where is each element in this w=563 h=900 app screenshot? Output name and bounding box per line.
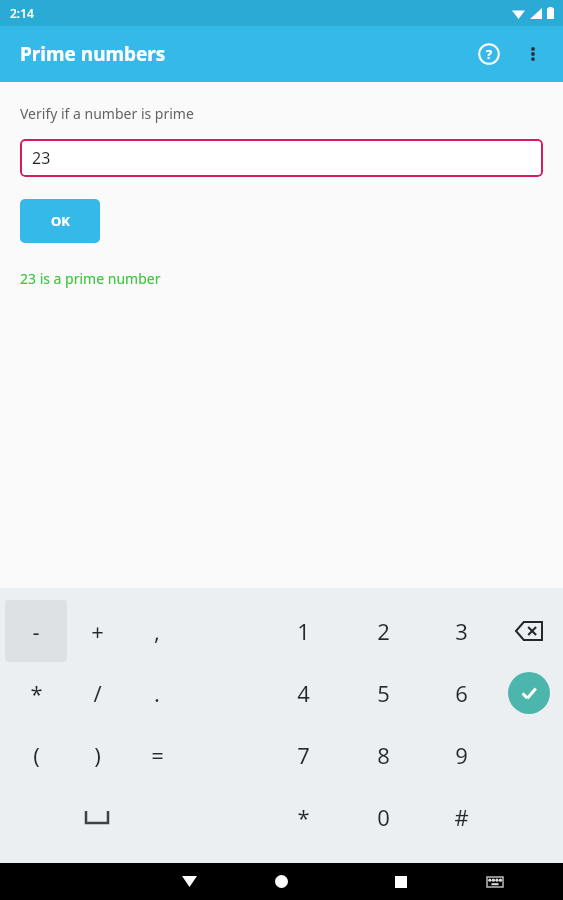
button[interactable]: . (125, 662, 189, 724)
button[interactable]: * (271, 786, 335, 848)
button[interactable]: Back (161, 863, 217, 900)
staticText: ? (486, 45, 493, 63)
staticText: = (151, 740, 164, 770)
staticText: ( (33, 740, 40, 770)
staticText: 8 (377, 740, 390, 770)
button[interactable]: Home (253, 863, 309, 900)
button[interactable]: More options (511, 32, 555, 76)
staticText: 7 (297, 740, 310, 770)
button[interactable]: 8 (351, 724, 415, 786)
button[interactable]: / (65, 662, 129, 724)
staticText: * (30, 678, 43, 708)
staticText: 4 (297, 678, 310, 708)
button[interactable]: 1 (271, 600, 335, 662)
staticText: 9 (455, 740, 468, 770)
button[interactable]: 0 (351, 786, 415, 848)
staticText: / (93, 678, 102, 708)
staticText: Verify if a number is prime (20, 104, 194, 123)
staticText: 2 (377, 616, 390, 646)
staticText: 2:14 (10, 5, 34, 21)
button[interactable]: + (65, 600, 129, 662)
button[interactable]: 5 (351, 662, 415, 724)
staticText: . (154, 678, 160, 708)
staticText: 23 (32, 147, 51, 169)
staticText: 3 (455, 616, 468, 646)
staticText: Prime numbers (20, 41, 166, 67)
button[interactable]: Space (65, 786, 129, 848)
button[interactable]: ( (4, 724, 68, 786)
button[interactable]: 6 (429, 662, 493, 724)
staticText: 23 is a prime number (20, 269, 161, 288)
staticText: 6 (455, 678, 468, 708)
button[interactable]: 9 (429, 724, 493, 786)
button[interactable]: ) (65, 724, 129, 786)
button[interactable]: Enter (497, 662, 561, 724)
button[interactable]: 3 (429, 600, 493, 662)
button[interactable]: OK (20, 199, 100, 243)
staticText: # (454, 802, 469, 832)
button[interactable]: - (4, 600, 68, 662)
button[interactable]: , (125, 600, 189, 662)
button[interactable]: Delete (497, 600, 561, 662)
button[interactable]: Recent apps (373, 863, 429, 900)
staticText: ) (94, 740, 101, 770)
button[interactable]: * (4, 662, 68, 724)
button[interactable]: 23 (20, 139, 543, 177)
staticText: * (297, 802, 310, 832)
button[interactable]: # (429, 786, 493, 848)
button[interactable]: 4 (271, 662, 335, 724)
button[interactable]: 2 (351, 600, 415, 662)
button[interactable]: Change keyboard (467, 863, 523, 900)
button[interactable]: = (125, 724, 189, 786)
staticText: , (154, 616, 160, 646)
button[interactable]: 7 (271, 724, 335, 786)
staticText: OK (51, 212, 70, 230)
button[interactable]: Help (467, 32, 511, 76)
staticText: 1 (297, 616, 310, 646)
staticText: - (32, 616, 40, 646)
staticText: 5 (377, 678, 390, 708)
staticText: + (91, 616, 104, 646)
staticText: 0 (377, 802, 390, 832)
